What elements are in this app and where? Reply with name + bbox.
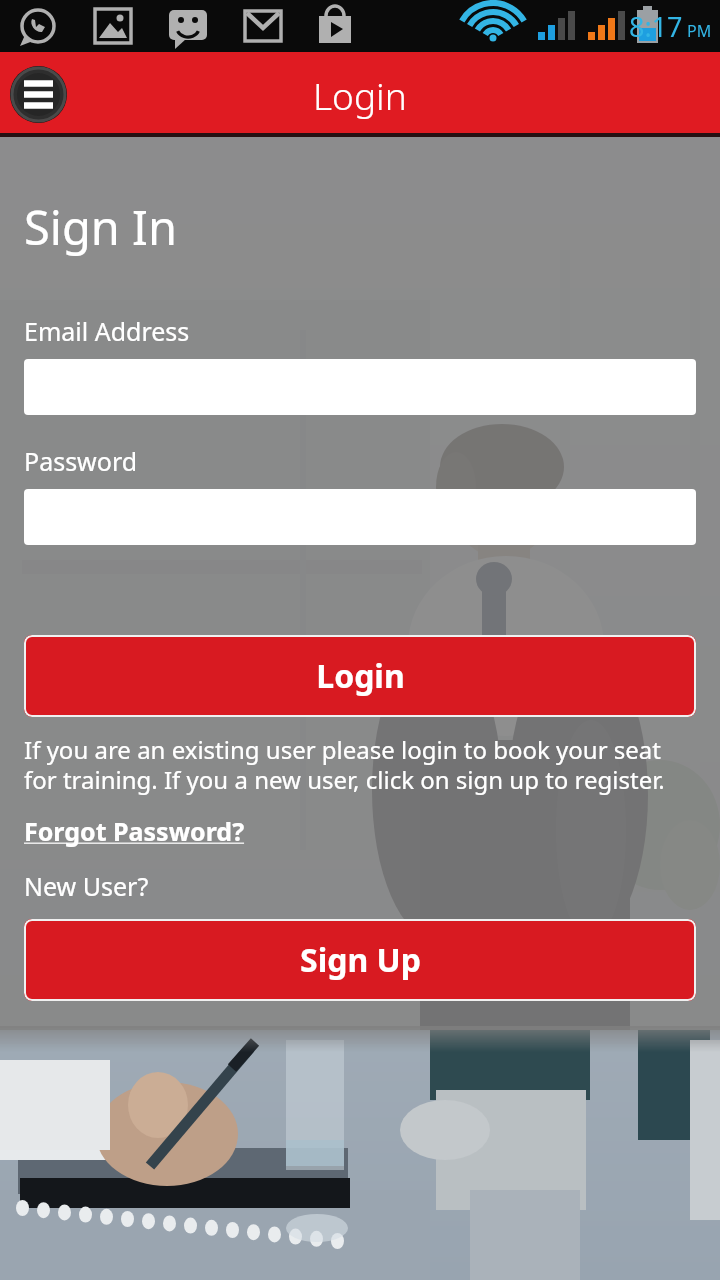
staticText: Email Address <box>24 314 190 348</box>
button[interactable]: Sign Up <box>24 919 696 1001</box>
button[interactable]: Login <box>24 635 696 717</box>
staticText: Forgot Password? <box>24 814 245 848</box>
staticText: PM <box>687 20 712 42</box>
staticText: New User? <box>24 869 149 903</box>
staticText: Password <box>24 444 138 478</box>
staticText: Login <box>316 654 405 698</box>
staticText: Login <box>313 70 407 120</box>
staticText: If you are an existing user please login… <box>24 733 696 796</box>
button[interactable]: Forgot Password? <box>24 814 245 848</box>
staticText: 8:17 <box>629 8 683 45</box>
staticText: Sign In <box>24 195 178 259</box>
staticText: Sign Up <box>300 938 421 982</box>
button[interactable]: Open navigation menu <box>10 66 67 123</box>
